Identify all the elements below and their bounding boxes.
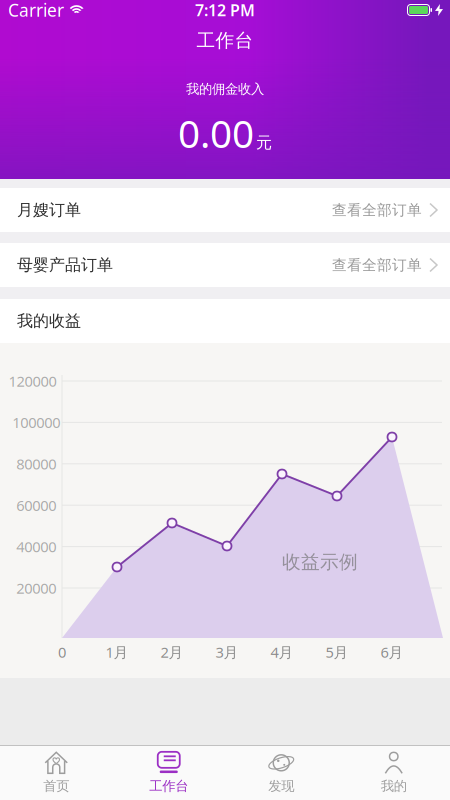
staticText: 工作台 <box>149 778 188 794</box>
staticText: 100000 <box>12 413 60 432</box>
staticText: Carrier <box>8 0 64 21</box>
button[interactable]: 母婴产品订单 <box>0 243 450 287</box>
staticText: 月嫂订单 <box>17 200 81 220</box>
staticText: 查看全部订单 <box>332 256 422 274</box>
staticText: 首页 <box>43 778 69 794</box>
staticText: 我的佣金收入 <box>186 81 264 97</box>
staticText: 收益示例 <box>282 550 358 573</box>
staticText: 工作台 <box>196 29 253 52</box>
staticText: 4月 <box>270 642 293 662</box>
button[interactable]: 我的 <box>337 745 450 800</box>
staticText: 20000 <box>16 578 56 598</box>
staticText: 120000 <box>8 371 56 391</box>
staticText: 2月 <box>160 642 183 662</box>
button[interactable]: 工作台 <box>112 745 225 800</box>
staticText: 3月 <box>215 642 238 662</box>
staticText: 0.00 <box>178 107 254 159</box>
staticText: 1月 <box>105 642 128 662</box>
staticText: 我的收益 <box>17 311 81 331</box>
button[interactable]: 月嫂订单 <box>0 188 450 232</box>
staticText: 5月 <box>325 642 348 662</box>
staticText: 母婴产品订单 <box>17 255 113 275</box>
staticText: 40000 <box>16 537 56 556</box>
staticText: 发现 <box>268 778 294 794</box>
staticText: 60000 <box>16 495 56 515</box>
staticText: 查看全部订单 <box>332 201 422 219</box>
staticText: 6月 <box>380 642 403 662</box>
staticText: 0 <box>58 642 66 662</box>
staticText: 7:12 PM <box>195 0 255 21</box>
staticText: 元 <box>256 133 272 152</box>
button[interactable]: 首页 <box>0 745 112 800</box>
button[interactable]: 发现 <box>225 745 337 800</box>
staticText: 80000 <box>16 454 56 474</box>
staticText: 我的 <box>381 778 407 794</box>
